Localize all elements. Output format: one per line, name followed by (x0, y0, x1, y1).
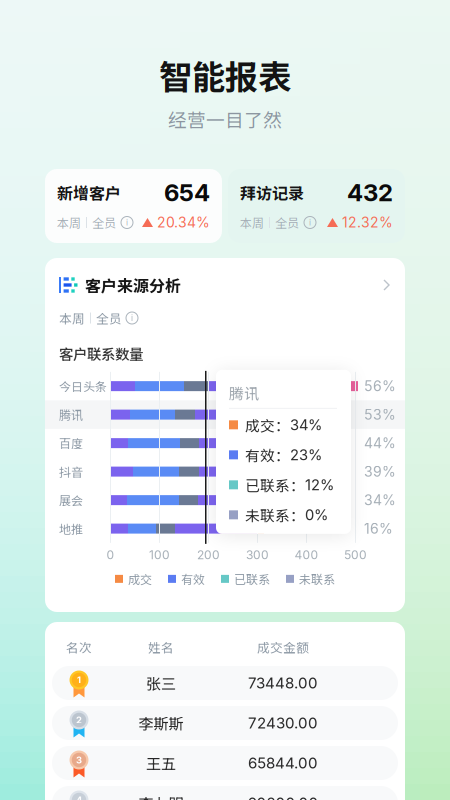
staticText: 12% (305, 476, 334, 494)
staticText: 12.32% (342, 214, 393, 231)
button[interactable]: 本周 (59, 309, 85, 327)
staticText: 全员 (96, 309, 122, 327)
staticText: 34% (290, 416, 322, 434)
staticText: 本周 (59, 309, 85, 327)
staticText: i (309, 217, 311, 228)
staticText: 未联系 (299, 570, 335, 588)
button[interactable]: 客户来源分析 (45, 274, 405, 296)
staticText: 本周 (57, 214, 81, 231)
staticText: 全员 (92, 214, 116, 231)
staticText: 34% (364, 492, 396, 508)
staticText: 客户来源分析 (85, 273, 181, 297)
staticText: 500 (344, 548, 367, 562)
staticText: 今日头条 (59, 377, 107, 395)
staticText: 李斯斯 (138, 712, 183, 734)
staticText: 72430.00 (248, 714, 318, 732)
staticText: 智能报表 (159, 51, 291, 99)
staticText: 未联系： (245, 504, 305, 525)
staticText: 成交 (128, 570, 152, 588)
staticText: 全员 (275, 214, 299, 231)
staticText: 王五 (146, 752, 176, 774)
staticText: 名次 (66, 638, 92, 656)
staticText: 200 (197, 548, 220, 562)
staticText: 65844.00 (248, 754, 318, 772)
staticText: 新增客户 (57, 181, 121, 204)
staticText: i (126, 217, 128, 228)
button[interactable]: 2 (52, 706, 398, 740)
button[interactable]: 拜访记录 (228, 169, 405, 243)
staticText: 432 (347, 178, 393, 207)
staticText: 53% (364, 406, 396, 423)
staticText: 3 (76, 754, 82, 766)
staticText: 0% (305, 506, 328, 524)
staticText: 地推 (59, 520, 83, 537)
staticText: 有效： (245, 444, 290, 465)
staticText: 400 (294, 548, 318, 562)
staticText: 成交金额 (257, 638, 309, 656)
staticText: 抖音 (59, 463, 83, 480)
staticText: 成交： (245, 414, 290, 435)
staticText: 20.34% (157, 214, 210, 231)
staticText: 1 (77, 674, 81, 686)
staticText: 腾讯 (59, 406, 83, 423)
staticText: 23% (290, 446, 322, 464)
staticText: 李七明 (138, 792, 183, 800)
staticText: 100 (149, 548, 170, 562)
staticText: 经营一目了然 (168, 105, 282, 132)
button[interactable]: 4 (52, 786, 398, 800)
staticText: 44% (364, 435, 396, 451)
staticText: 本周 (240, 214, 264, 231)
button[interactable]: 新增客户 (45, 169, 222, 243)
staticText: 有效 (181, 570, 205, 588)
staticText: 0 (106, 548, 114, 562)
staticText: 56% (364, 378, 396, 394)
staticText: 654 (164, 178, 210, 207)
staticText: 300 (246, 548, 269, 562)
staticText: 腾讯 (229, 382, 259, 403)
staticText: 73448.00 (248, 674, 318, 692)
staticText: 39% (364, 463, 396, 480)
staticText: 张三 (146, 672, 176, 694)
staticText: 2 (76, 714, 82, 726)
staticText: i (131, 313, 133, 323)
staticText: 16% (364, 520, 393, 537)
staticText: 已联系： (245, 474, 305, 495)
staticText: 姓名 (148, 638, 174, 656)
staticText: 已联系 (234, 570, 270, 588)
staticText: 客户联系数量 (59, 343, 143, 364)
button[interactable]: 1 (52, 666, 398, 700)
staticText: 拜访记录 (240, 181, 304, 204)
staticText: 百度 (59, 434, 83, 452)
staticText: 4 (76, 794, 82, 800)
staticText: 60200.00 (247, 794, 318, 800)
staticText: 展会 (59, 491, 83, 509)
button[interactable]: 3 (52, 746, 398, 780)
button[interactable]: 全员 (96, 309, 122, 327)
